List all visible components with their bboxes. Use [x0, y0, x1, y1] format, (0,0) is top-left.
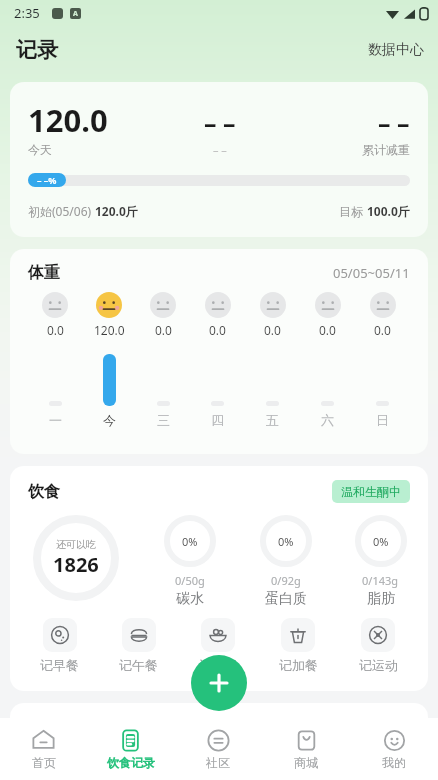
- staticText: 碳水: [176, 590, 204, 608]
- staticText: 0.0: [155, 322, 172, 338]
- staticText: – –%: [37, 174, 57, 186]
- staticText: 0/50g: [175, 573, 205, 588]
- staticText: 100.0斤: [367, 203, 410, 219]
- button[interactable]: 记午餐: [99, 618, 178, 673]
- staticText: 120.0: [28, 99, 108, 141]
- staticText: 我的: [382, 755, 406, 770]
- button[interactable]: 记晚餐: [178, 618, 258, 673]
- staticText: 记早餐: [40, 657, 79, 673]
- staticText: 今日未记录: [66, 722, 126, 737]
- staticText: 记晚餐: [199, 657, 238, 673]
- staticText: 今: [103, 412, 116, 428]
- staticText: 1826: [53, 551, 99, 578]
- staticText: 蛋白质: [265, 590, 307, 608]
- staticText: 温和生酮中: [341, 484, 401, 499]
- staticText: 饮食: [28, 482, 60, 502]
- button[interactable]: 体重: [10, 249, 428, 454]
- staticText: 累计减重: [362, 142, 410, 157]
- staticText: – –: [204, 105, 236, 139]
- button[interactable]: 首页: [0, 718, 87, 780]
- staticText: 0.0: [209, 322, 226, 338]
- staticText: 0%: [182, 534, 198, 549]
- staticText: 0.0: [264, 322, 281, 338]
- staticText: 0%: [373, 534, 389, 549]
- button[interactable]: 数据中心: [368, 41, 424, 59]
- staticText: 今天: [28, 142, 52, 157]
- button[interactable]: 记运动: [338, 618, 418, 673]
- staticText: 120.0: [94, 322, 125, 338]
- staticText: 脂肪: [367, 590, 395, 608]
- staticText: 饮食记录: [107, 755, 155, 770]
- staticText: 体重: [28, 263, 60, 283]
- staticText: 四: [211, 412, 224, 428]
- staticText: 0.0: [47, 322, 64, 338]
- staticText: 记运动: [359, 657, 398, 673]
- staticText: 0/143g: [362, 573, 399, 588]
- staticText: 0.0: [374, 322, 391, 338]
- staticText: 一: [49, 412, 62, 428]
- staticText: 0.0: [319, 322, 336, 338]
- button[interactable]: 记早餐: [20, 618, 99, 673]
- staticText: 五: [266, 412, 279, 428]
- staticText: 首页: [32, 755, 56, 770]
- staticText: 记录: [16, 37, 58, 63]
- staticText: 2:35: [14, 4, 40, 22]
- staticText: 0/92g: [271, 573, 301, 588]
- staticText: 记午餐: [119, 657, 158, 673]
- staticText: 0%: [278, 534, 294, 549]
- staticText: 初始(05/06): [28, 203, 95, 219]
- staticText: 三: [157, 412, 170, 428]
- staticText: 六: [321, 412, 334, 428]
- staticText: 05/05~05/11: [333, 264, 410, 282]
- button[interactable]: 商城: [262, 718, 350, 780]
- staticText: – –: [378, 105, 410, 139]
- staticText: 还可以吃: [56, 538, 96, 551]
- staticText: 周期: [28, 717, 60, 737]
- staticText: 日: [376, 412, 389, 428]
- button[interactable]: 120.0: [10, 82, 428, 237]
- button[interactable]: 我的: [350, 718, 438, 780]
- staticText: 数据中心: [368, 41, 424, 59]
- button[interactable]: 饮食: [10, 466, 428, 691]
- staticText: 社区: [206, 755, 230, 770]
- button[interactable]: 饮食记录: [87, 718, 174, 780]
- staticText: 记加餐: [279, 657, 318, 673]
- button[interactable]: Add record: [191, 655, 247, 711]
- button[interactable]: 周期: [10, 703, 428, 743]
- staticText: 120.0斤: [95, 203, 138, 219]
- staticText: A: [73, 9, 78, 19]
- staticText: 商城: [294, 755, 318, 770]
- staticText: – –: [213, 142, 227, 157]
- button[interactable]: 温和生酮中: [341, 484, 401, 499]
- button[interactable]: 社区: [174, 718, 262, 780]
- button[interactable]: 记加餐: [258, 618, 338, 673]
- staticText: 目标: [339, 203, 367, 219]
